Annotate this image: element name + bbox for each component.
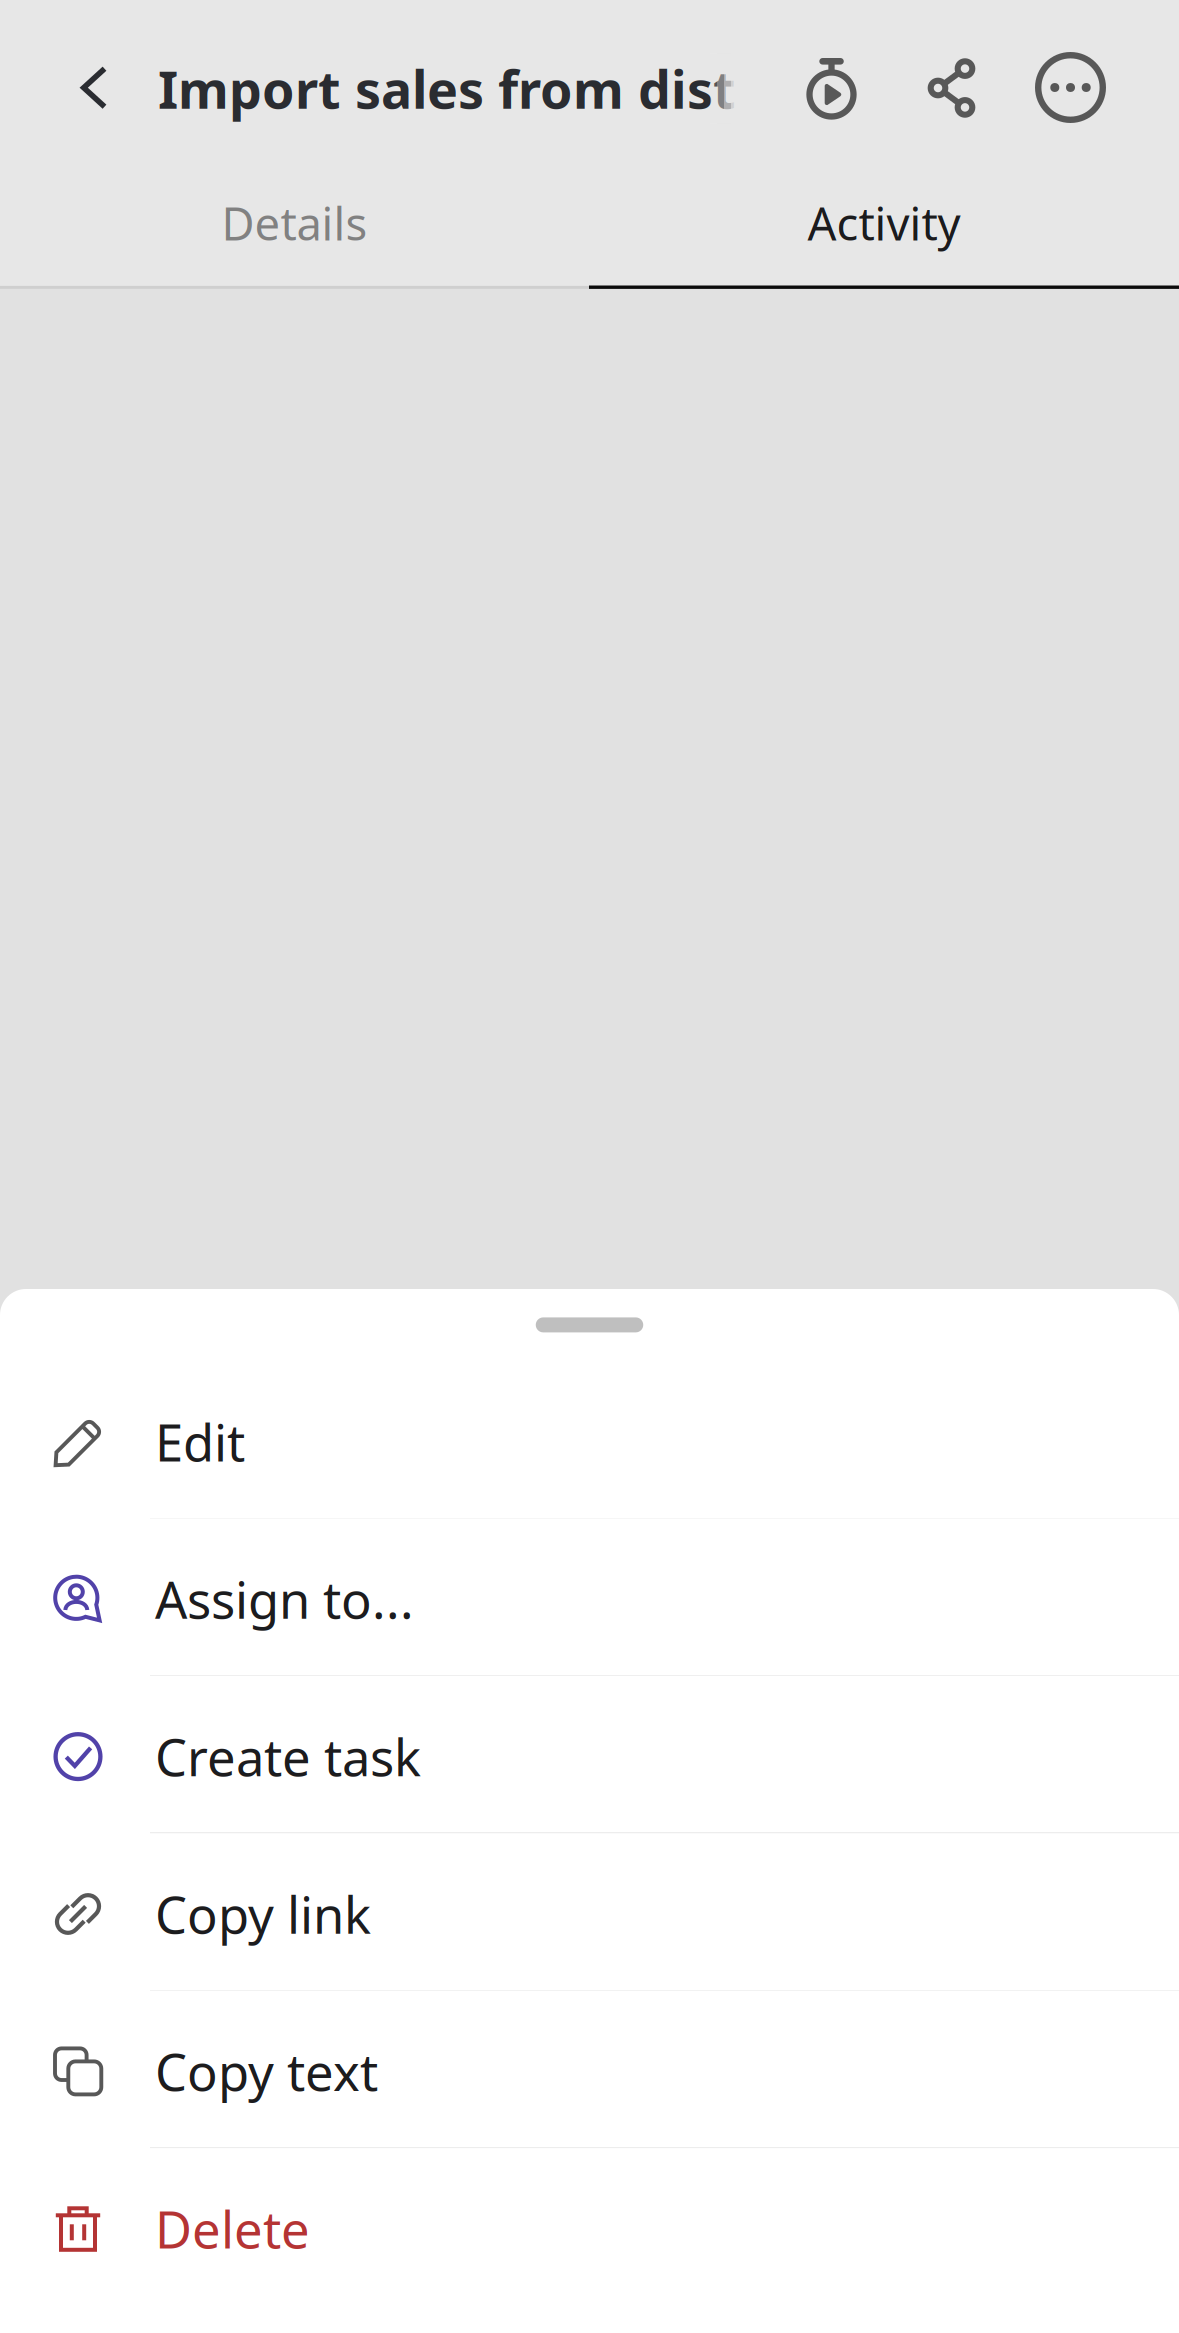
button[interactable]: Start timer — [788, 42, 874, 134]
button[interactable]: Activity — [589, 158, 1179, 287]
staticText: Edit — [155, 1408, 245, 1475]
button[interactable]: Edit — [0, 1361, 1179, 1518]
button[interactable]: Create task — [0, 1676, 1179, 1833]
staticText: Delete — [155, 2195, 310, 2262]
button[interactable]: Copy link — [0, 1833, 1179, 1991]
staticText: Details — [221, 193, 367, 253]
button[interactable]: Back — [61, 45, 127, 131]
staticText: Copy text — [155, 2038, 378, 2105]
staticText: Import sales from distr — [158, 54, 759, 123]
button[interactable]: Delete — [0, 2148, 1179, 2305]
button[interactable]: Copy text — [0, 1991, 1179, 2148]
staticText: Copy link — [155, 1880, 371, 1948]
button[interactable]: Details — [0, 158, 589, 287]
button[interactable]: Assign to... — [0, 1518, 1179, 1676]
staticText: Assign to... — [155, 1566, 414, 1633]
button[interactable]: More options — [1026, 41, 1114, 133]
staticText: Create task — [155, 1723, 421, 1790]
staticText: Activity — [807, 193, 960, 253]
button[interactable]: Share — [911, 42, 997, 134]
